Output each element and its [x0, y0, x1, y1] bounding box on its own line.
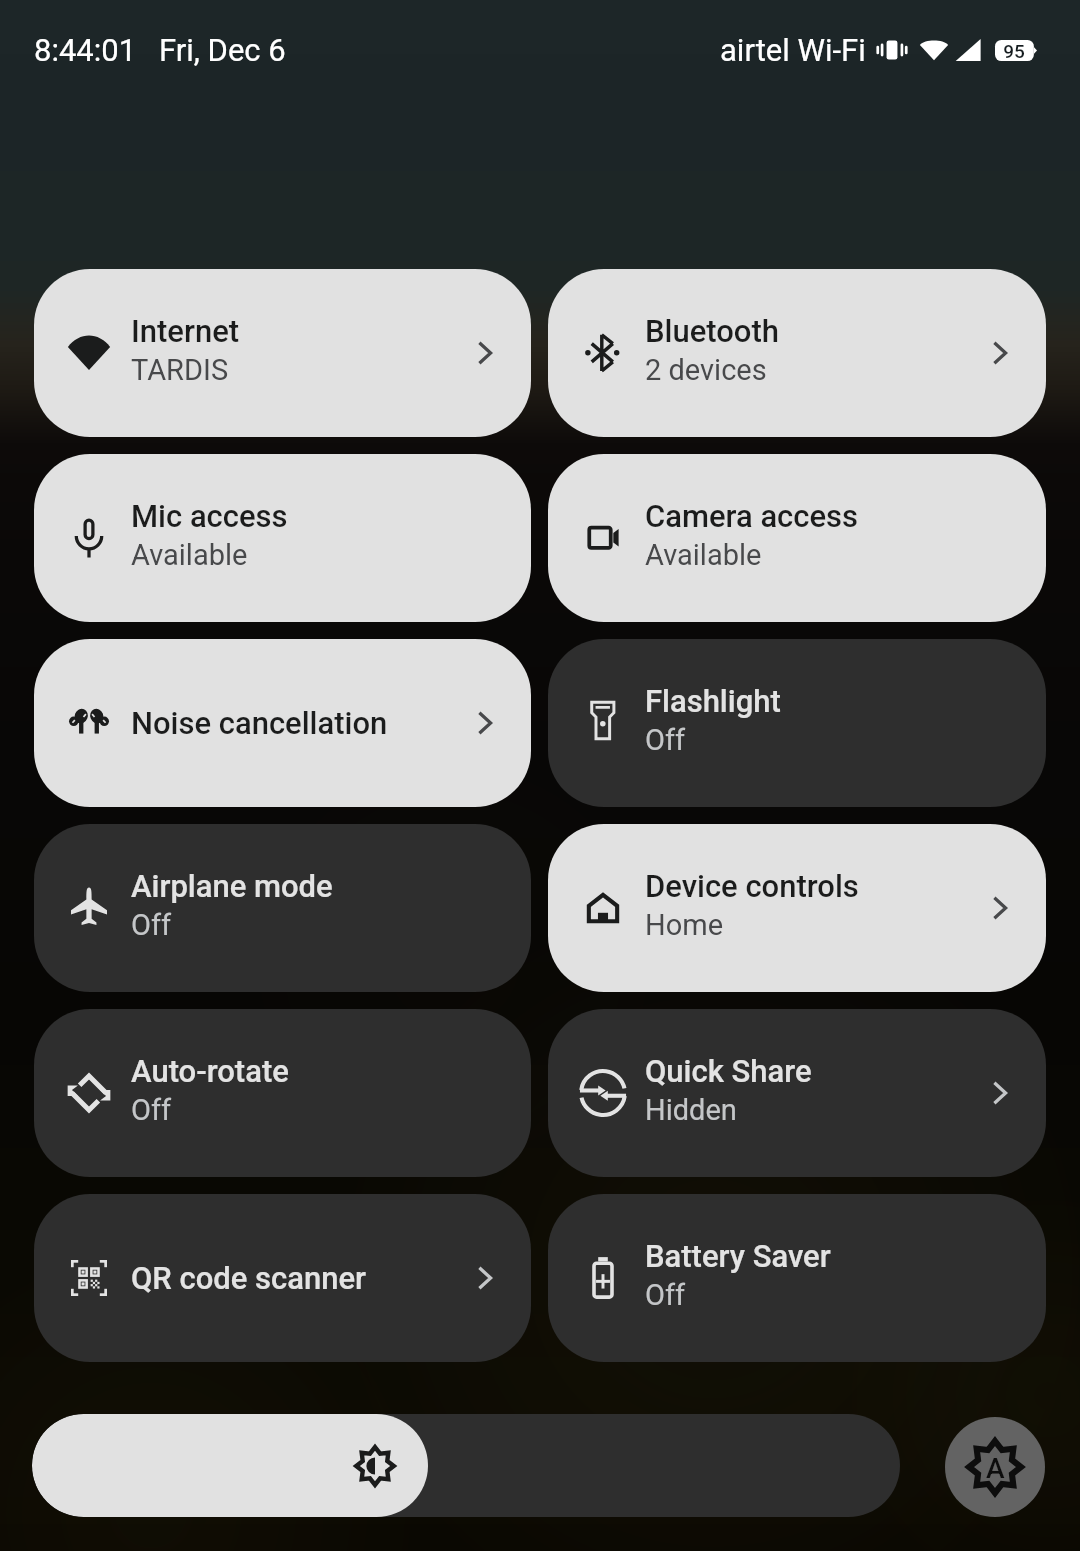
- staticText: Off: [645, 723, 686, 757]
- staticText: Hidden: [645, 1093, 737, 1127]
- staticText: Off: [131, 908, 172, 942]
- staticText: Device controls: [645, 868, 859, 904]
- staticText: airtel Wi-Fi: [720, 32, 866, 68]
- staticText: Flashlight: [645, 683, 781, 719]
- button[interactable]: Device controls: [548, 824, 1046, 992]
- button[interactable]: Quick Share: [548, 1009, 1046, 1177]
- staticText: TARDIS: [131, 353, 229, 387]
- button[interactable]: Mic access: [34, 454, 531, 622]
- staticText: QR code scanner: [131, 1260, 367, 1296]
- staticText: Off: [645, 1278, 686, 1312]
- staticText: Available: [645, 538, 762, 572]
- staticText: A: [986, 1452, 1005, 1485]
- staticText: Internet: [131, 313, 240, 349]
- staticText: Fri, Dec 6: [159, 32, 286, 68]
- button[interactable]: Airplane mode: [34, 824, 531, 992]
- button[interactable]: Flashlight: [548, 639, 1046, 807]
- staticText: Auto-rotate: [131, 1053, 289, 1089]
- button[interactable]: Battery Saver: [548, 1194, 1046, 1362]
- staticText: Off: [131, 1093, 172, 1127]
- staticText: Airplane mode: [131, 868, 333, 904]
- button[interactable]: Bluetooth: [548, 269, 1046, 437]
- staticText: Home: [645, 908, 724, 942]
- button[interactable]: Camera access: [548, 454, 1046, 622]
- staticText: Camera access: [645, 498, 858, 534]
- button[interactable]: Internet: [34, 269, 531, 437]
- staticText: Bluetooth: [645, 313, 780, 349]
- staticText: 2 devices: [645, 353, 767, 387]
- button[interactable]: Brightness: [32, 1414, 900, 1517]
- staticText: Quick Share: [645, 1053, 812, 1089]
- staticText: Battery Saver: [645, 1238, 831, 1274]
- staticText: Mic access: [131, 498, 288, 534]
- button[interactable]: Auto-rotate: [34, 1009, 531, 1177]
- staticText: Noise cancellation: [131, 705, 388, 741]
- staticText: 8:44:01: [34, 32, 137, 68]
- button[interactable]: Noise cancellation: [34, 639, 531, 807]
- staticText: Available: [131, 538, 248, 572]
- staticText: 95: [1003, 40, 1025, 61]
- button[interactable]: QR code scanner: [34, 1194, 531, 1362]
- button[interactable]: Auto brightness: [945, 1417, 1045, 1517]
